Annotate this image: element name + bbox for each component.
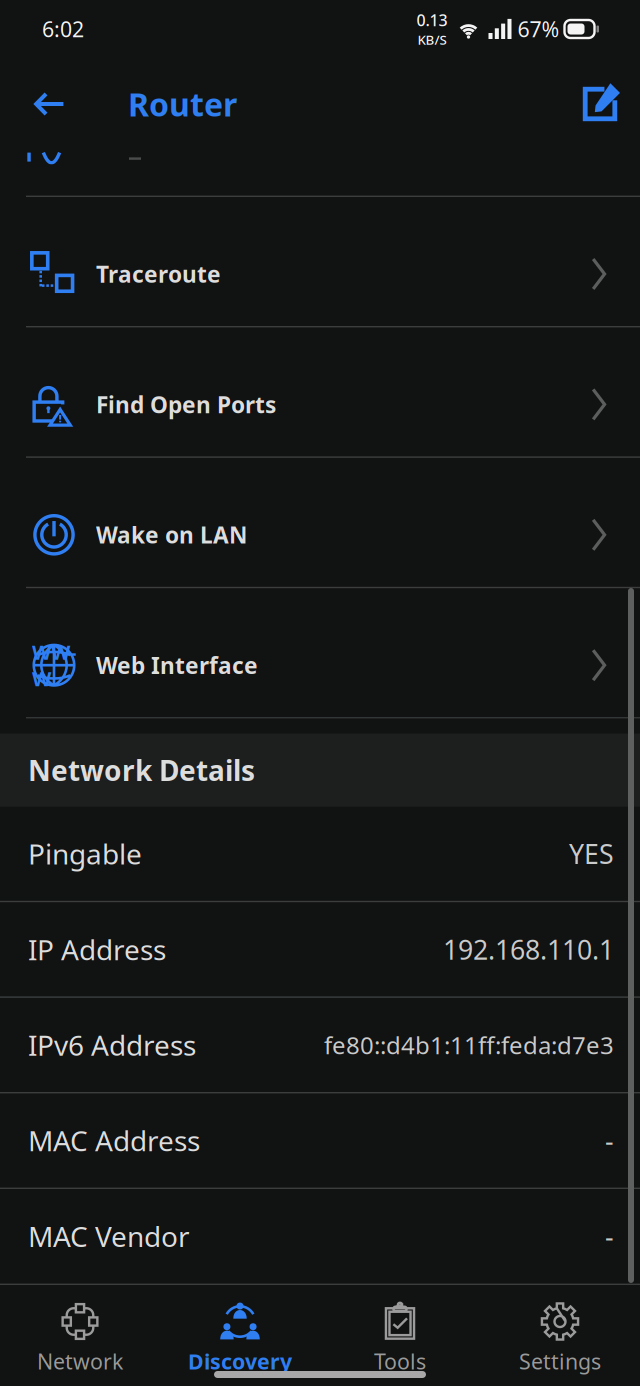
staticText: 192.168.110.1 <box>443 932 614 967</box>
staticText: YES <box>569 836 614 871</box>
staticText: Network <box>37 1347 123 1375</box>
button[interactable]: Traceroute <box>0 197 640 326</box>
staticText: Network Details <box>28 751 255 789</box>
button[interactable]: Settings <box>480 1285 640 1386</box>
button[interactable]: Wake on LAN <box>0 458 640 587</box>
staticText: Settings <box>519 1347 601 1375</box>
staticText: MAC Vendor <box>28 1217 190 1255</box>
staticText: MAC Address <box>28 1122 200 1159</box>
staticText: KB/S <box>417 31 446 48</box>
staticText: Pingable <box>28 835 142 872</box>
staticText: 67% <box>517 15 559 43</box>
button[interactable]: Network <box>0 1285 160 1386</box>
staticText: Find Open Ports <box>96 389 276 419</box>
staticText: IPv6 Address <box>28 1026 196 1063</box>
button[interactable]: Back <box>0 58 86 150</box>
button[interactable]: WWW <box>0 588 640 717</box>
staticText: - <box>605 1218 614 1254</box>
staticText: 0.13 <box>416 9 447 31</box>
staticText: Wake on LAN <box>96 520 247 550</box>
staticText: 6:02 <box>42 15 84 43</box>
button[interactable]: Find Open Ports <box>0 327 640 456</box>
staticText: WWW <box>32 639 76 692</box>
staticText: - <box>605 1123 614 1158</box>
staticText: Traceroute <box>96 259 221 289</box>
staticText: Router <box>128 83 237 125</box>
button[interactable]: Edit <box>576 58 640 150</box>
button[interactable]: Discovery <box>160 1285 320 1386</box>
button[interactable]: Tools <box>320 1285 480 1386</box>
staticText: Web Interface <box>96 650 258 680</box>
staticText: fe80::d4b1:11ff:feda:d7e3 <box>324 1029 614 1061</box>
staticText: Tools <box>374 1347 426 1375</box>
button[interactable]: Router <box>86 58 237 150</box>
staticText: Discovery <box>188 1347 292 1375</box>
staticText: IP Address <box>28 931 166 968</box>
